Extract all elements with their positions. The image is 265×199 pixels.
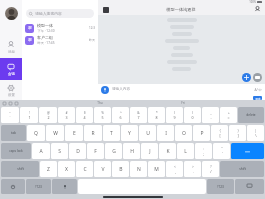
button[interactable]: Hide keyboard xyxy=(235,179,264,194)
staticText: | xyxy=(255,129,257,133)
button[interactable]: ! xyxy=(20,107,38,123)
button[interactable]: Z xyxy=(40,161,57,177)
button[interactable]: shift xyxy=(220,161,264,177)
button[interactable]: ) xyxy=(184,107,201,123)
button[interactable]: & xyxy=(130,107,147,123)
button[interactable]: B xyxy=(112,161,129,177)
button[interactable]: 设置 xyxy=(0,80,22,100)
button[interactable]: ? xyxy=(202,161,219,177)
button[interactable]: " xyxy=(213,143,230,159)
button[interactable]: T xyxy=(103,125,120,141)
button[interactable]: | xyxy=(247,125,264,141)
button[interactable]: P xyxy=(193,125,210,141)
button[interactable]: Y xyxy=(121,125,138,141)
staticText: V xyxy=(101,166,105,173)
button[interactable]: G xyxy=(105,143,122,159)
button[interactable]: 消息 xyxy=(0,36,22,58)
button[interactable]: 请输入搜索内容 xyxy=(26,9,94,18)
button[interactable]: Profile xyxy=(5,7,18,20)
button[interactable]: Group members xyxy=(254,6,261,13)
staticText: 5 xyxy=(101,115,104,120)
button[interactable]: + xyxy=(220,107,237,123)
staticText: C xyxy=(83,166,87,173)
button[interactable]: Microphone xyxy=(52,179,77,194)
button[interactable]: Camera xyxy=(253,73,262,82)
button[interactable]: F xyxy=(87,143,104,159)
staticText: . xyxy=(193,169,194,174)
staticText: D xyxy=(76,148,80,155)
button[interactable]: Emoji xyxy=(1,179,25,194)
staticText: G xyxy=(112,148,116,155)
staticText: 昨天 · 17:45 xyxy=(37,41,55,45)
button[interactable]: Menu xyxy=(102,6,109,13)
staticText: W xyxy=(53,130,58,137)
staticText: ] xyxy=(237,133,239,138)
staticText: M xyxy=(154,166,159,173)
button[interactable]: E xyxy=(65,125,83,141)
button[interactable]: X xyxy=(58,161,75,177)
button[interactable]: * xyxy=(148,107,165,123)
button[interactable]: caps lock xyxy=(1,143,31,159)
button[interactable]: I xyxy=(157,125,174,141)
button[interactable]: D xyxy=(69,143,86,159)
button[interactable]: % xyxy=(94,107,111,123)
button[interactable]: K xyxy=(159,143,176,159)
staticText: U xyxy=(146,130,150,137)
button[interactable]: 发送 xyxy=(253,96,262,100)
button[interactable]: Add xyxy=(242,73,251,82)
button[interactable]: ?123 xyxy=(207,179,234,194)
button[interactable]: ?123 xyxy=(26,179,51,194)
staticText: & xyxy=(137,111,140,115)
staticText: shift xyxy=(17,167,24,171)
button[interactable]: O xyxy=(175,125,192,141)
button[interactable]: shift xyxy=(1,161,39,177)
button[interactable]: @ xyxy=(39,107,57,123)
button[interactable]: J xyxy=(141,143,158,159)
button[interactable]: A xyxy=(32,143,50,159)
button[interactable]: tab xyxy=(1,125,26,141)
staticText: Thu xyxy=(97,101,103,105)
button[interactable]: } xyxy=(229,125,246,141)
button[interactable]: M xyxy=(148,161,165,177)
button[interactable]: Q xyxy=(27,125,45,141)
staticText: S xyxy=(58,148,61,155)
staticText: : xyxy=(203,147,204,151)
button[interactable]: ^ xyxy=(112,107,129,123)
button[interactable]: delete xyxy=(238,107,264,123)
button[interactable]: H xyxy=(123,143,140,159)
button[interactable]: $ xyxy=(76,107,93,123)
button[interactable]: ~ xyxy=(1,107,19,123)
button[interactable]: W xyxy=(46,125,64,141)
button[interactable]: _ xyxy=(202,107,219,123)
button[interactable]: ( xyxy=(166,107,183,123)
staticText: Q xyxy=(34,130,38,137)
button[interactable]: Voice xyxy=(101,86,109,94)
staticText: 8 xyxy=(155,115,158,120)
staticText: X xyxy=(65,166,68,173)
button[interactable]: V xyxy=(94,161,111,177)
button[interactable]: : xyxy=(195,143,212,159)
button[interactable]: Return xyxy=(231,143,264,159)
button[interactable]: R xyxy=(84,125,102,141)
staticText: 设置 xyxy=(8,93,15,97)
button[interactable]: 群 xyxy=(22,22,98,34)
button[interactable]: S xyxy=(51,143,68,159)
button[interactable]: { xyxy=(211,125,228,141)
button[interactable]: Tool 2 xyxy=(14,101,18,105)
button[interactable]: U xyxy=(139,125,156,141)
staticText: ' xyxy=(222,151,223,156)
button[interactable]: Tool 1 xyxy=(8,101,12,105)
staticText: B xyxy=(119,166,123,173)
button[interactable]: < xyxy=(166,161,183,177)
button[interactable]: > xyxy=(184,161,201,177)
button[interactable]: N xyxy=(130,161,147,177)
button[interactable]: 会话 xyxy=(0,58,22,80)
staticText: 12:3 xyxy=(89,26,95,30)
button[interactable]: 群 xyxy=(22,34,98,46)
button[interactable]: # xyxy=(58,107,75,123)
button[interactable]: L xyxy=(177,143,194,159)
button[interactable]: Tool 0 xyxy=(2,101,6,105)
staticText: - xyxy=(210,115,212,120)
button[interactable]: C xyxy=(76,161,93,177)
